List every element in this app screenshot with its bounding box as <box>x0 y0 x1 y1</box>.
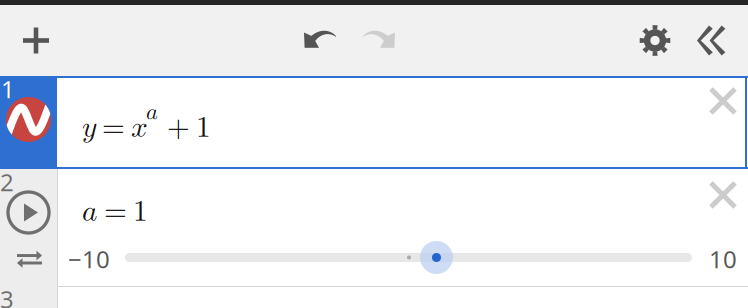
button[interactable]: Delete expression 1 <box>694 72 748 130</box>
button[interactable]: Redo <box>347 5 409 76</box>
button[interactable]: Hide expression list <box>681 5 743 76</box>
staticText: + 1 <box>167 113 211 142</box>
staticText: 10 <box>709 243 737 275</box>
staticText: 𝑎 = 1 <box>82 197 148 226</box>
button[interactable]: Value of a <box>125 241 692 274</box>
button[interactable]: Add expression <box>0 5 72 76</box>
staticText: 2 <box>0 166 14 198</box>
button[interactable]: Undo <box>290 5 352 76</box>
button[interactable]: Loop direction <box>17 250 42 267</box>
button[interactable]: Settings <box>624 5 686 76</box>
staticText: 1 <box>1 73 15 105</box>
staticText: 𝑦 = 𝑥 <box>82 113 148 142</box>
button[interactable]: Play slider animation <box>8 192 49 233</box>
staticText: 𝑎 <box>146 101 158 124</box>
staticText: −10 <box>68 243 110 275</box>
staticText: 3 <box>0 283 14 308</box>
button[interactable]: Delete expression 2 <box>694 166 748 224</box>
